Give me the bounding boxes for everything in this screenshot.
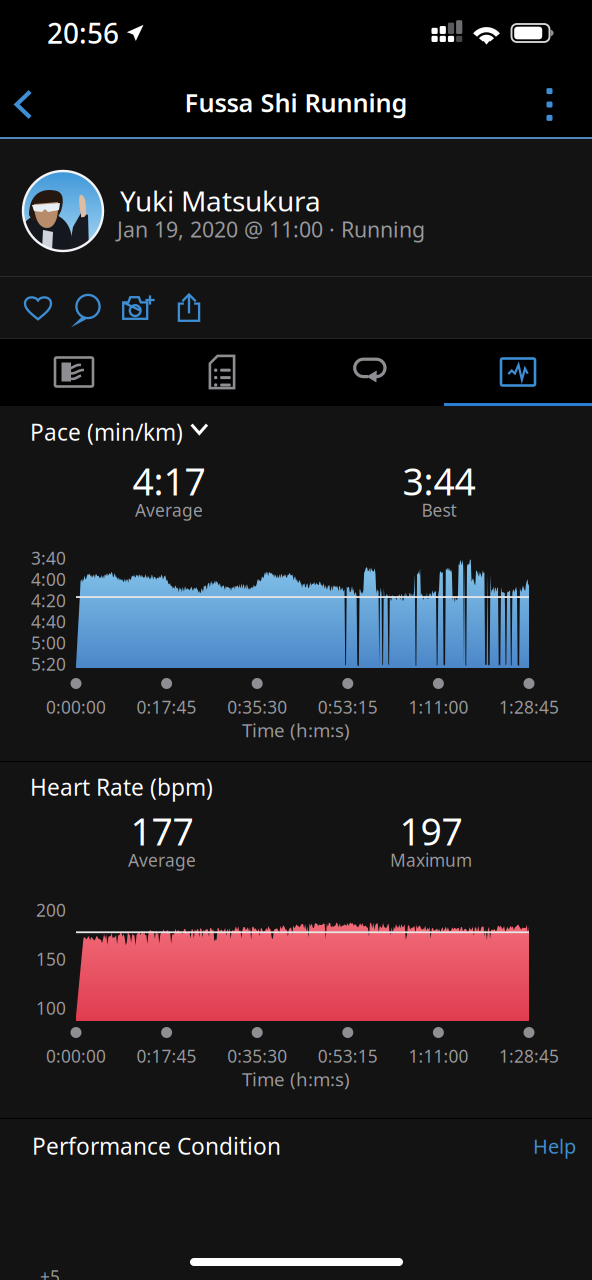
- button[interactable]: Comment: [63, 278, 113, 339]
- staticText: Pace (min/km): [30, 417, 183, 447]
- staticText: 4:40: [31, 610, 66, 633]
- staticText: 0:17:45: [137, 1044, 197, 1067]
- staticText: Help: [533, 1133, 576, 1159]
- staticText: Time (h:m:s): [242, 1067, 350, 1091]
- staticText: 0:53:15: [318, 695, 378, 718]
- staticText: Maximum: [390, 848, 472, 871]
- staticText: 1:11:00: [408, 1044, 468, 1067]
- button[interactable]: Map: [0, 338, 148, 406]
- staticText: 20:56: [47, 14, 119, 52]
- staticText: 0:53:15: [318, 1044, 378, 1067]
- staticText: 0:35:30: [227, 1044, 287, 1067]
- button[interactable]: Add photo: [114, 277, 164, 338]
- staticText: 0:17:45: [137, 695, 197, 718]
- staticText: 100: [36, 996, 66, 1019]
- staticText: +5: [40, 1265, 60, 1280]
- button[interactable]: Performance Condition: [0, 1119, 470, 1173]
- staticText: Fussa Shi Running: [184, 86, 407, 119]
- staticText: Average: [135, 498, 203, 521]
- button[interactable]: Splits: [148, 338, 296, 406]
- staticText: 1:11:00: [408, 695, 468, 718]
- staticText: Heart Rate (bpm): [30, 772, 213, 802]
- button[interactable]: Share: [164, 277, 214, 338]
- staticText: 3:40: [31, 546, 66, 569]
- staticText: 200: [36, 898, 66, 921]
- staticText: 5:00: [31, 631, 66, 654]
- staticText: 197: [399, 806, 462, 856]
- staticText: Average: [128, 848, 196, 871]
- staticText: 1:28:45: [499, 695, 559, 718]
- staticText: 4:00: [31, 568, 66, 591]
- staticText: Performance Condition: [32, 1131, 281, 1161]
- button[interactable]: Laps: [296, 339, 444, 407]
- staticText: 4:17: [132, 456, 205, 506]
- staticText: Best: [421, 498, 456, 521]
- staticText: 0:00:00: [46, 1044, 106, 1067]
- staticText: 1:28:45: [499, 1044, 559, 1067]
- button[interactable]: More options: [507, 66, 592, 139]
- button[interactable]: Back: [0, 66, 47, 139]
- button[interactable]: Charts: [444, 338, 592, 406]
- staticText: 5:20: [31, 652, 66, 675]
- staticText: 177: [130, 806, 193, 856]
- staticText: Jan 19, 2020 @ 11:00 · Running: [117, 215, 425, 243]
- staticText: 4:20: [31, 589, 66, 612]
- button[interactable]: Help: [470, 1119, 590, 1173]
- button[interactable]: Like: [13, 277, 63, 338]
- staticText: 0:35:30: [227, 695, 287, 718]
- staticText: Yuki Matsukura: [120, 182, 321, 219]
- staticText: 150: [36, 947, 66, 970]
- staticText: 3:44: [402, 456, 475, 506]
- staticText: Time (h:m:s): [242, 718, 350, 742]
- staticText: 0:00:00: [46, 695, 106, 718]
